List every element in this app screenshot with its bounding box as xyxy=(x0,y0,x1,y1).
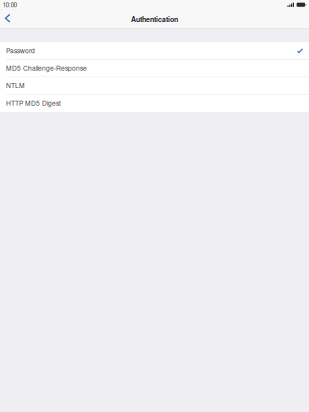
staticText: Authentication xyxy=(131,14,178,24)
staticText: HTTP MD5 Digest xyxy=(6,98,61,107)
staticText: Password xyxy=(6,46,35,55)
button[interactable]: Back xyxy=(0,12,17,27)
button[interactable]: MD5 Challenge-Response xyxy=(0,60,309,77)
staticText: MD5 Challenge-Response xyxy=(6,63,87,72)
staticText: 10:00 xyxy=(3,0,17,9)
staticText: NTLM xyxy=(6,80,25,90)
button[interactable]: NTLM xyxy=(0,77,309,95)
button[interactable]: HTTP MD5 Digest xyxy=(0,95,309,112)
button[interactable]: Password xyxy=(0,42,309,60)
